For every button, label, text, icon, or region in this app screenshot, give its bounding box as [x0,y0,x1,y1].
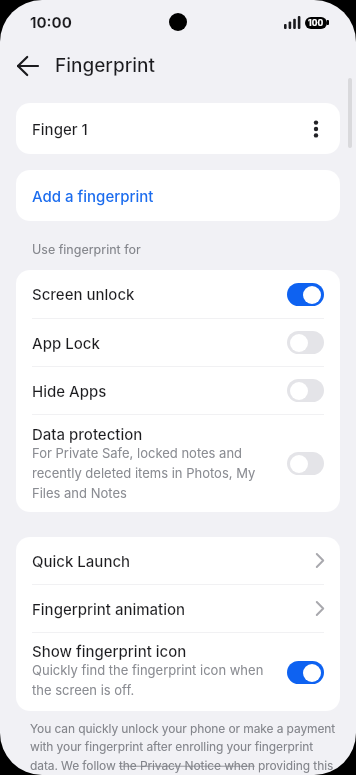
staticText: Show fingerprint icon [32,642,187,660]
button[interactable]: App Lock [16,319,340,366]
staticText: Screen unlock [32,285,287,303]
staticText: App Lock [32,334,287,352]
button[interactable] [306,119,326,139]
staticText: 100 [308,18,324,28]
button[interactable] [287,331,324,354]
button[interactable]: Finger 1 [16,103,340,154]
button[interactable]: Data protection [16,415,340,512]
button[interactable] [287,379,324,402]
staticText: Use fingerprint for [32,242,141,257]
staticText: Finger 1 [32,120,306,138]
button[interactable]: Fingerprint animation [16,585,340,632]
button[interactable]: Show fingerprint icon [16,633,340,711]
staticText: You can quickly unlock your phone or mak… [30,721,336,773]
staticText: Fingerprint [55,54,155,77]
staticText: Add a fingerprint [32,187,154,205]
button[interactable] [287,283,324,306]
button[interactable] [287,452,324,475]
staticText: 10:00 [30,13,72,31]
staticText: Fingerprint animation [32,600,316,618]
staticText: Hide Apps [32,382,287,400]
button[interactable] [287,661,324,684]
staticText: Data protection [32,425,143,443]
button[interactable]: Screen unlock [16,270,340,318]
staticText: Quickly find the fingerprint icon when t… [32,662,264,698]
button[interactable]: Add a fingerprint [16,170,340,221]
button[interactable] [14,52,42,80]
staticText: Quick Launch [32,552,316,570]
button[interactable]: Hide Apps [16,367,340,414]
staticText: For Private Safe, locked notes and recen… [32,445,256,501]
button[interactable]: Quick Launch [16,537,340,584]
